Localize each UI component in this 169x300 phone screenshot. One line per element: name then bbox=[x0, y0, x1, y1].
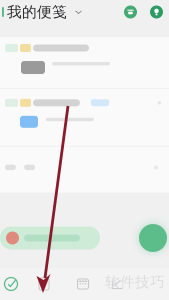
button[interactable] bbox=[0, 89, 169, 146]
button[interactable]: Notes bbox=[22, 268, 66, 300]
button[interactable]: New note bbox=[139, 224, 167, 252]
button[interactable]: Calendar bbox=[66, 268, 100, 300]
button[interactable]: 我的便笺 bbox=[2, 0, 82, 24]
button[interactable]: Tips bbox=[149, 4, 164, 19]
staticText: 我的便笺 bbox=[7, 3, 67, 21]
button[interactable]: Tasks bbox=[0, 268, 22, 300]
staticText: 软件技巧 bbox=[105, 273, 165, 291]
button[interactable]: Statistics bbox=[100, 268, 134, 300]
button[interactable] bbox=[0, 37, 169, 88]
button[interactable]: Store bbox=[123, 4, 138, 19]
button[interactable] bbox=[0, 147, 169, 193]
